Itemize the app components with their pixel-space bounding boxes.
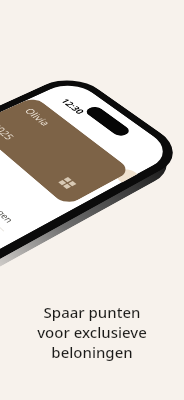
staticText: Olivia xyxy=(21,106,54,128)
staticText: 2025 xyxy=(0,121,18,142)
staticText: gespaarde beloningen xyxy=(0,160,17,225)
staticText: Spaar punten voor exclusieve beloningen xyxy=(37,302,147,362)
staticText: 12:30 xyxy=(58,97,88,116)
